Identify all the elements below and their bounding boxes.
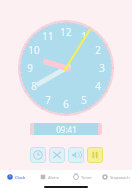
staticText: 2 xyxy=(95,43,101,57)
button[interactable]: Shuffle xyxy=(49,147,65,163)
staticText: 1 xyxy=(81,29,87,43)
staticText: 8 xyxy=(31,79,37,93)
button[interactable]: Clock xyxy=(0,170,33,184)
staticText: 4 xyxy=(95,79,101,93)
staticText: 09:41 xyxy=(56,124,77,135)
button[interactable]: Timer xyxy=(30,147,46,163)
staticText: 11 xyxy=(42,29,54,43)
staticText: 9 xyxy=(27,61,33,75)
staticText: Clock xyxy=(15,175,26,180)
staticText: 5 xyxy=(81,93,87,107)
staticText: 12 xyxy=(60,25,72,39)
button[interactable]: 09:41 xyxy=(30,123,102,135)
button[interactable]: Alarm xyxy=(33,170,66,184)
staticText: Stopwatch xyxy=(110,175,130,180)
staticText: 3 xyxy=(99,61,105,75)
button[interactable]: Timer xyxy=(66,170,99,184)
button[interactable]: Stopwatch xyxy=(99,170,132,184)
staticText: Alarm xyxy=(48,175,60,180)
staticText: 10 xyxy=(28,43,40,57)
button[interactable]: Volume xyxy=(68,147,84,163)
button[interactable]: Pause xyxy=(87,147,103,163)
staticText: 7 xyxy=(45,93,51,107)
staticText: Timer xyxy=(81,175,92,180)
staticText: 6 xyxy=(63,97,69,111)
